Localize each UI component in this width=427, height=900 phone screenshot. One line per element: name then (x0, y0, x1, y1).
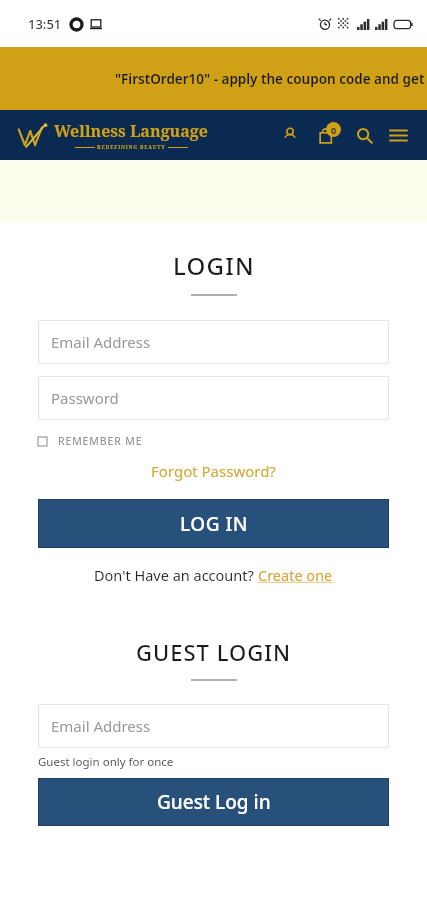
button[interactable]: LOG IN (38, 499, 389, 548)
staticText: Guest Log in (157, 789, 271, 815)
staticText: Don't Have an account? (94, 565, 258, 585)
staticText: "FirstOrder10" - apply the coupon code a… (115, 70, 425, 88)
staticText: REMEMBER ME (58, 434, 143, 448)
staticText: GUEST LOGIN (136, 637, 292, 667)
button[interactable]: "FirstOrder10" - apply the coupon code a… (0, 47, 427, 110)
staticText: 0 (331, 124, 337, 136)
button[interactable]: Email Address (38, 704, 389, 748)
staticText: Email Address (51, 716, 151, 736)
button[interactable]: Search (349, 120, 379, 150)
button[interactable]: Wellness Language home (16, 120, 208, 151)
button[interactable]: Email Address (38, 320, 389, 364)
button[interactable]: Guest Log in (38, 778, 389, 826)
staticText: Guest login only for once (38, 754, 174, 770)
staticText: REDEFINING BEAUTY (95, 144, 168, 151)
button[interactable]: Create one (258, 565, 333, 585)
button[interactable]: Menu (383, 120, 413, 150)
staticText: Email Address (51, 332, 151, 352)
staticText: Forgot Password? (151, 461, 276, 481)
button[interactable]: REMEMBER ME (38, 434, 389, 448)
button[interactable]: Password (38, 376, 389, 420)
button[interactable]: Account (275, 120, 305, 150)
button[interactable]: Cart, 0 items (311, 119, 343, 151)
staticText: Create one (258, 565, 333, 585)
staticText: LOG IN (180, 511, 248, 537)
staticText: 13:51 (28, 15, 62, 33)
button[interactable]: Forgot Password? (147, 459, 280, 483)
staticText: Wellness Language (54, 120, 208, 142)
staticText: LOGIN (173, 249, 255, 282)
staticText: Password (51, 388, 119, 408)
